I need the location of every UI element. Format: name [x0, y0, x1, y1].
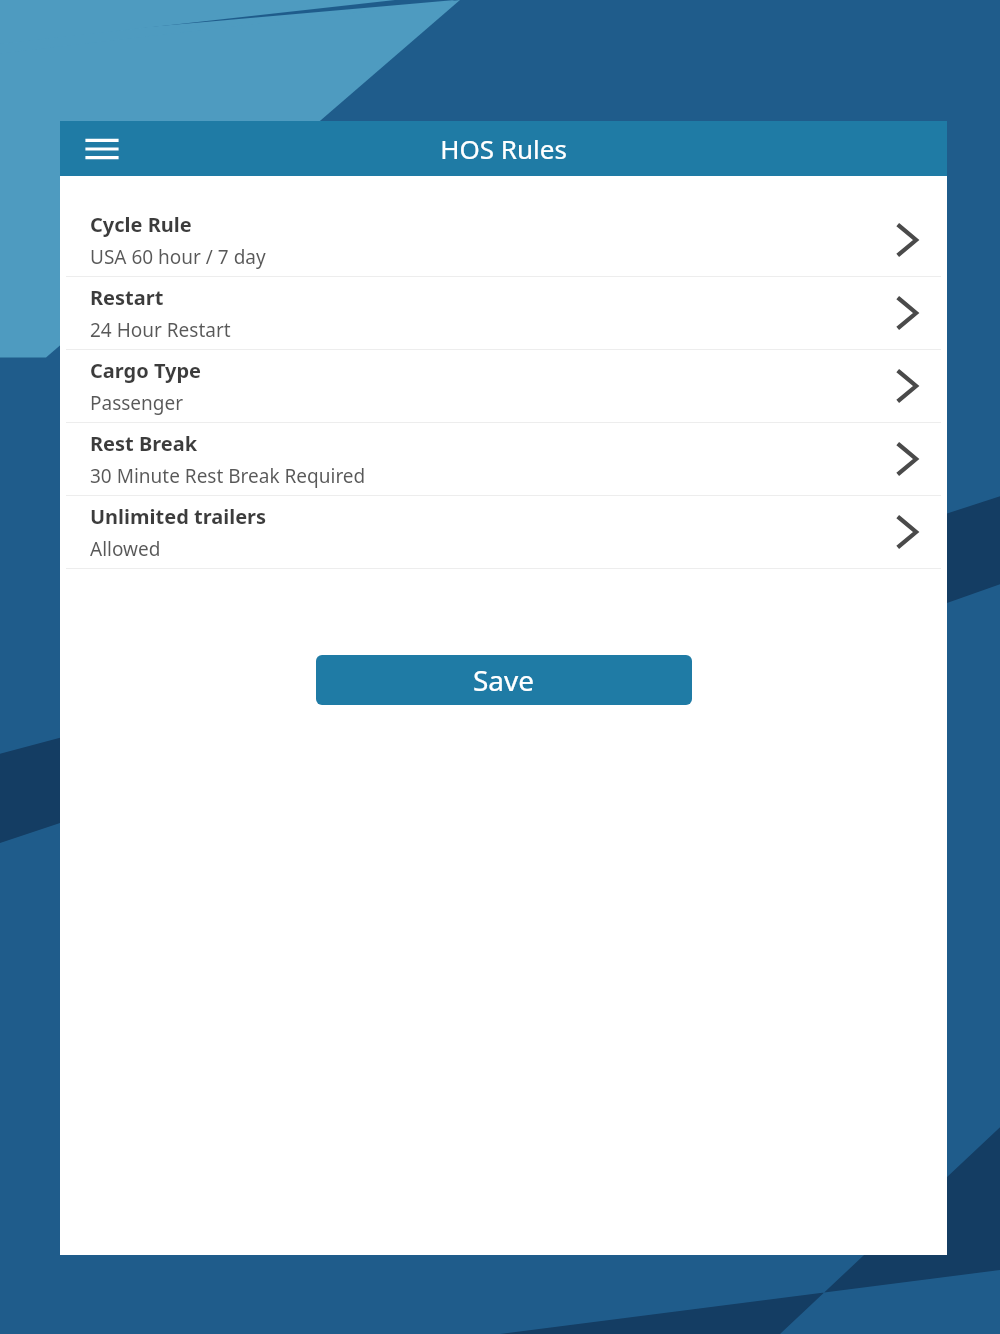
staticText: Passenger: [90, 390, 184, 416]
button[interactable]: Cycle Rule: [60, 204, 947, 276]
staticText: HOS Rules: [440, 131, 567, 166]
button[interactable]: Open navigation menu: [76, 123, 128, 175]
staticText: Unlimited trailers: [90, 503, 267, 530]
staticText: USA 60 hour / 7 day: [90, 244, 266, 270]
button[interactable]: Cargo Type: [60, 350, 947, 422]
staticText: Cycle Rule: [90, 211, 192, 238]
staticText: 24 Hour Restart: [90, 317, 231, 343]
staticText: Save: [473, 661, 535, 699]
staticText: Rest Break: [90, 430, 198, 457]
button[interactable]: Unlimited trailers: [60, 496, 947, 568]
staticText: 30 Minute Rest Break Required: [90, 463, 366, 489]
staticText: Allowed: [90, 536, 161, 562]
staticText: Restart: [90, 284, 164, 311]
button[interactable]: Rest Break: [60, 423, 947, 495]
staticText: Cargo Type: [90, 357, 202, 384]
button[interactable]: Restart: [60, 277, 947, 349]
button[interactable]: Save: [316, 655, 692, 705]
